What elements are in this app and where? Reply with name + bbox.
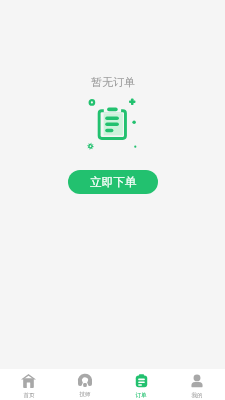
button[interactable]: 技师 [57,369,113,400]
button[interactable]: 订单 [113,369,169,400]
staticText: 立即下单 [90,175,137,190]
button[interactable]: 首页 [0,369,57,400]
button[interactable]: 立即下单 [68,170,158,194]
staticText: 我的 [191,392,203,399]
staticText: 订单 [135,392,147,399]
button[interactable]: 我的 [169,369,225,400]
staticText: 暂无订单 [91,75,135,89]
staticText: 首页 [23,392,35,399]
staticText: 技师 [79,391,91,398]
